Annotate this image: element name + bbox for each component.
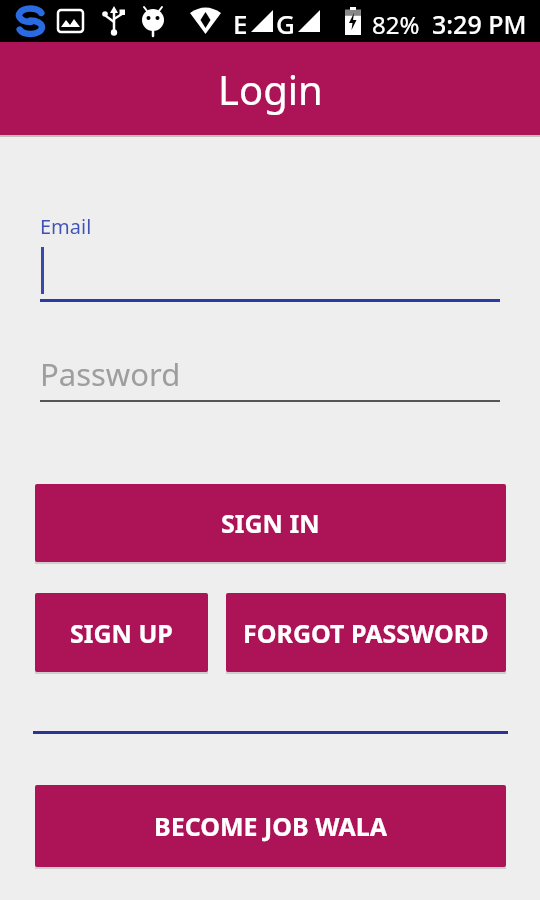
button[interactable]: FORGOT PASSWORD bbox=[226, 593, 506, 672]
staticText: 82% bbox=[372, 8, 420, 41]
staticText: Email bbox=[40, 213, 92, 240]
staticText: SIGN UP bbox=[70, 616, 173, 650]
button[interactable]: SIGN IN bbox=[35, 484, 506, 562]
staticText: G bbox=[276, 6, 295, 41]
staticText: Password bbox=[40, 353, 181, 395]
staticText: BECOME JOB WALA bbox=[154, 809, 387, 843]
staticText: E bbox=[233, 6, 248, 41]
staticText: SIGN IN bbox=[221, 506, 320, 540]
staticText: Login bbox=[218, 62, 323, 116]
button[interactable]: BECOME JOB WALA bbox=[35, 785, 506, 867]
button[interactable]: SIGN UP bbox=[35, 593, 208, 672]
staticText: 3:29 PM bbox=[432, 7, 527, 41]
staticText: FORGOT PASSWORD bbox=[243, 616, 489, 650]
